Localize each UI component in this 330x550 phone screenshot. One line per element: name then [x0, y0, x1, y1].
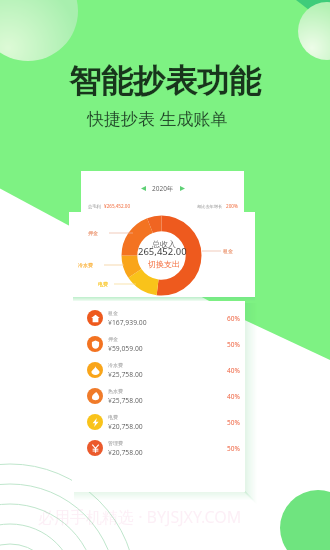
other: Next year [180, 186, 185, 191]
staticText: 50% [227, 340, 240, 349]
staticText: 265,452.00 [138, 245, 187, 258]
staticText: 租金 [108, 310, 118, 316]
staticText: 热水费 [108, 388, 123, 394]
staticText: 智能抄表功能 [69, 61, 261, 101]
staticText: ¥59,059.00 [108, 344, 143, 353]
staticText: 电费 [98, 281, 108, 287]
button[interactable]: 押金 [72, 331, 245, 357]
staticText: 总收入 [152, 239, 176, 249]
staticText: 50% [227, 444, 240, 453]
staticText: 200% [226, 203, 238, 209]
staticText: 快捷抄表 生成账单 [87, 107, 228, 130]
button[interactable]: 热水费 [72, 383, 245, 409]
staticText: ¥20,758.00 [108, 422, 143, 431]
staticText: 40% [227, 366, 240, 375]
staticText: 总毛利 [88, 204, 101, 209]
button[interactable]: 租金 [72, 305, 245, 331]
staticText: 40% [227, 392, 240, 401]
staticText: 冷水费 [78, 262, 93, 268]
button[interactable]: 管理费 [72, 435, 245, 461]
staticText: 50% [227, 418, 240, 427]
other: Previous year [141, 186, 146, 191]
staticText: 押金 [88, 230, 98, 236]
button[interactable]: 冷水费 [72, 357, 245, 383]
staticText: ¥25,758.00 [108, 396, 143, 405]
staticText: ¥167,939.00 [108, 318, 147, 327]
staticText: 冷水费 [108, 362, 123, 368]
staticText: ¥20,758.00 [108, 448, 143, 457]
staticText: 租金 [223, 248, 233, 254]
staticText: 电费 [108, 414, 118, 420]
button[interactable]: 切换支出 [148, 259, 180, 269]
staticText: 60% [227, 314, 240, 323]
staticText: 押金 [108, 336, 118, 342]
button[interactable]: Previous year [81, 179, 244, 197]
staticText: 2020年 [152, 184, 174, 193]
staticText: 相比去年增长 [197, 204, 223, 209]
staticText: 必用手机精选 · BYJSJXY.COM [38, 506, 242, 528]
staticText: 管理费 [108, 440, 123, 446]
staticText: ¥25,758.00 [108, 370, 143, 379]
staticText: ¥265,452.00 [104, 203, 131, 209]
button[interactable]: 电费 [72, 409, 245, 435]
